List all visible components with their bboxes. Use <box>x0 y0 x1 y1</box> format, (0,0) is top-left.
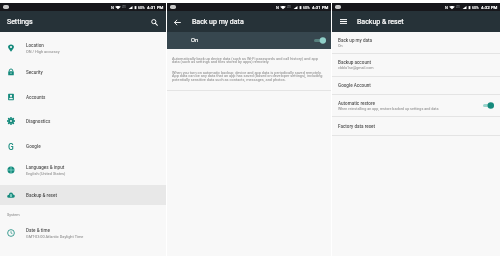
staticText: On <box>191 37 199 44</box>
staticText: When reinstalling an app, restore backed… <box>338 107 439 111</box>
staticText: Languages & input <box>26 165 65 170</box>
button[interactable]: Google Account <box>332 77 500 94</box>
staticText: Automatic restore <box>338 101 375 106</box>
staticText: Factory data reset <box>338 124 376 129</box>
button[interactable]: Backup & reset <box>0 185 166 205</box>
button[interactable]: Security <box>0 62 166 82</box>
button[interactable]: Date & time <box>0 223 166 243</box>
button[interactable]: Factory data reset <box>332 117 500 135</box>
staticText: LTE <box>456 6 461 9</box>
staticText: ON / High accuracy <box>26 49 60 54</box>
staticText: Settings <box>7 18 33 26</box>
staticText: Accounts <box>26 95 46 100</box>
staticText: N <box>276 5 279 10</box>
staticText: GMT-03:00 Atlantic Daylight Time <box>26 234 84 239</box>
staticText: On <box>338 44 343 48</box>
staticText: LTE <box>122 6 127 9</box>
button[interactable]: Accounts <box>0 87 166 107</box>
staticText: When you turn on automatic backup, devic… <box>172 70 326 82</box>
staticText: 60% <box>472 6 479 10</box>
button[interactable]: Backup account <box>332 54 500 76</box>
staticText: Back up my data <box>192 18 244 26</box>
staticText: Backup account <box>338 60 372 65</box>
staticText: Location <box>26 43 44 48</box>
button[interactable]: Automatic restore <box>332 95 500 116</box>
staticText: 60% <box>138 6 145 10</box>
staticText: LTE <box>287 6 292 9</box>
button[interactable]: Back <box>171 16 183 28</box>
staticText: Security <box>26 70 43 75</box>
staticText: Google <box>26 144 41 149</box>
button[interactable]: G <box>0 136 166 156</box>
staticText: N <box>445 5 448 10</box>
staticText: 4:32 PM <box>481 5 498 10</box>
staticText: 60% <box>303 6 310 10</box>
staticText: Date & time <box>26 228 50 233</box>
staticText: 4:31 PM <box>147 5 164 10</box>
staticText: 4:31 PM <box>312 5 329 10</box>
staticText: Google Account <box>338 83 371 88</box>
button[interactable]: Menu <box>338 16 349 27</box>
staticText: cbbla1se@gmail.com <box>338 66 374 70</box>
button[interactable]: On <box>167 32 331 49</box>
staticText: Automatically back up device data (such … <box>172 56 326 64</box>
button[interactable]: Diagnostics <box>0 111 166 131</box>
staticText: System <box>7 212 20 216</box>
button[interactable]: Languages & input <box>0 160 166 180</box>
staticText: G <box>8 142 14 150</box>
button[interactable]: Location <box>0 38 166 58</box>
staticText: N <box>111 5 114 10</box>
staticText: Back up my data <box>338 38 373 43</box>
button[interactable]: Search <box>148 16 160 28</box>
staticText: Backup & reset <box>26 193 57 198</box>
staticText: Diagnostics <box>26 119 51 124</box>
staticText: English (United States) <box>26 171 66 176</box>
button[interactable]: Back up my data <box>332 32 500 53</box>
staticText: Backup & reset <box>357 18 404 26</box>
